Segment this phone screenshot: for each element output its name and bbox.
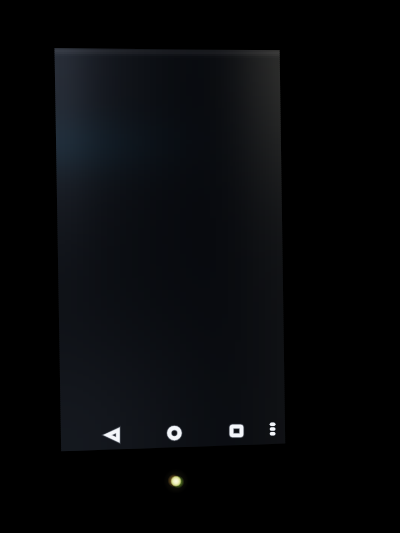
button[interactable]: Recent apps xyxy=(221,415,253,447)
button[interactable]: More options xyxy=(258,413,287,446)
button[interactable]: Home xyxy=(158,417,190,449)
button[interactable]: Back xyxy=(96,419,129,451)
